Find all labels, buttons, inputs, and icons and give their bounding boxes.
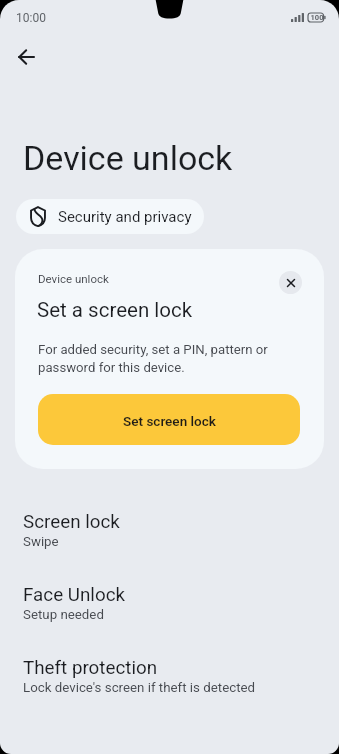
button[interactable]: Screen lock: [0, 492, 339, 565]
staticText: Lock device's screen if theft is detecte…: [23, 679, 256, 695]
staticText: Screen lock: [23, 510, 120, 533]
staticText: Theft protection: [23, 656, 158, 679]
button[interactable]: Face Unlock: [0, 565, 339, 638]
staticText: Security and privacy: [58, 208, 192, 226]
staticText: Face Unlock: [23, 583, 125, 606]
staticText: 10:00: [16, 10, 46, 25]
staticText: Device unlock: [38, 272, 109, 286]
button[interactable]: Dismiss: [279, 271, 302, 294]
staticText: 100: [310, 14, 324, 22]
staticText: Set a screen lock: [37, 297, 193, 322]
button[interactable]: Security and privacy: [16, 199, 204, 234]
staticText: Swipe: [23, 533, 59, 549]
staticText: Set screen lock: [123, 413, 216, 430]
staticText: Device unlock: [23, 138, 233, 178]
staticText: For added security, set a PIN, pattern o…: [38, 340, 286, 376]
staticText: Setup needed: [23, 606, 104, 622]
button[interactable]: Back: [6, 37, 46, 77]
button[interactable]: Set screen lock: [38, 394, 300, 445]
button[interactable]: Theft protection: [0, 638, 339, 711]
